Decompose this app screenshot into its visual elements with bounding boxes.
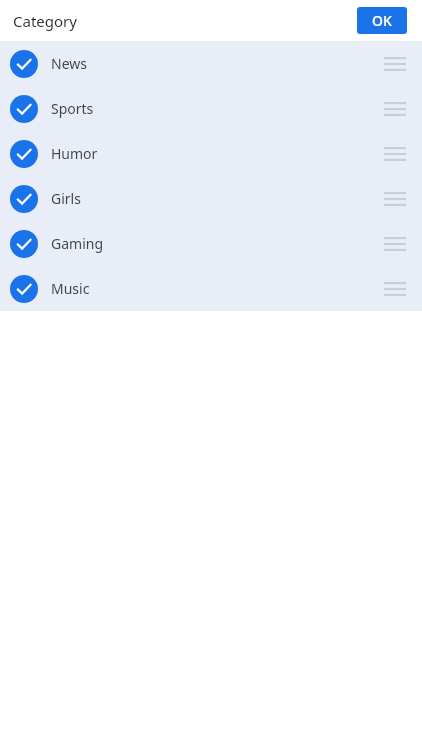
staticText: Girls — [51, 189, 81, 208]
button[interactable]: OK — [357, 7, 407, 34]
staticText: Humor — [51, 144, 98, 163]
other: Selected Girls — [10, 185, 38, 213]
button[interactable]: Selected News — [0, 41, 422, 86]
other: Reorder Humor — [384, 147, 406, 161]
button[interactable]: Selected Gaming — [0, 221, 422, 266]
staticText: OK — [372, 11, 392, 30]
other: Selected Gaming — [10, 230, 38, 258]
staticText: News — [51, 54, 87, 73]
other: Reorder News — [384, 57, 406, 71]
staticText: Gaming — [51, 234, 104, 253]
button[interactable]: Selected Sports — [0, 86, 422, 131]
other: Reorder Girls — [384, 192, 406, 206]
staticText: Category — [13, 11, 77, 31]
button[interactable]: Selected Humor — [0, 131, 422, 176]
other: Selected Humor — [10, 140, 38, 168]
button[interactable]: Selected Girls — [0, 176, 422, 221]
staticText: Sports — [51, 99, 94, 118]
staticText: Music — [51, 279, 90, 298]
other: Selected Music — [10, 275, 38, 303]
other: Selected News — [10, 50, 38, 78]
other: Selected Sports — [10, 95, 38, 123]
other: Reorder Gaming — [384, 237, 406, 251]
other: Reorder Music — [384, 282, 406, 296]
button[interactable]: Selected Music — [0, 266, 422, 311]
other: Reorder Sports — [384, 102, 406, 116]
